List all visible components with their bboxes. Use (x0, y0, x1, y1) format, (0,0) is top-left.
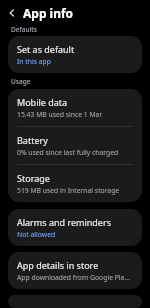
staticText: Defaults (11, 25, 38, 34)
button[interactable]: Set as default (8, 36, 142, 73)
staticText: 519 MB used in Internal storage (17, 186, 120, 195)
staticText: 0% used since last fully charged (17, 148, 119, 157)
staticText: Usage (11, 77, 31, 86)
staticText: App details in store (17, 259, 99, 271)
staticText: Set as default (17, 43, 75, 55)
button[interactable]: App details in store (8, 252, 142, 289)
staticText: Storage (17, 172, 50, 184)
staticText: Battery (17, 134, 48, 146)
staticText: 15.43 MB used since 1 Mar (17, 110, 103, 119)
button[interactable]: Version 25.5.3 (8, 295, 142, 308)
button[interactable]: Back (4, 5, 20, 21)
button[interactable]: Mobile data (8, 89, 142, 126)
staticText: Not allowed (17, 230, 56, 239)
button[interactable]: Battery (8, 127, 142, 164)
staticText: App downloaded from Google Play Store (17, 273, 133, 282)
staticText: App info (23, 5, 74, 21)
staticText: In this app (17, 57, 51, 66)
staticText: Mobile data (17, 96, 68, 108)
button[interactable]: Storage (8, 165, 142, 202)
button[interactable]: Alarms and reminders (8, 209, 142, 246)
staticText: Alarms and reminders (17, 216, 111, 228)
